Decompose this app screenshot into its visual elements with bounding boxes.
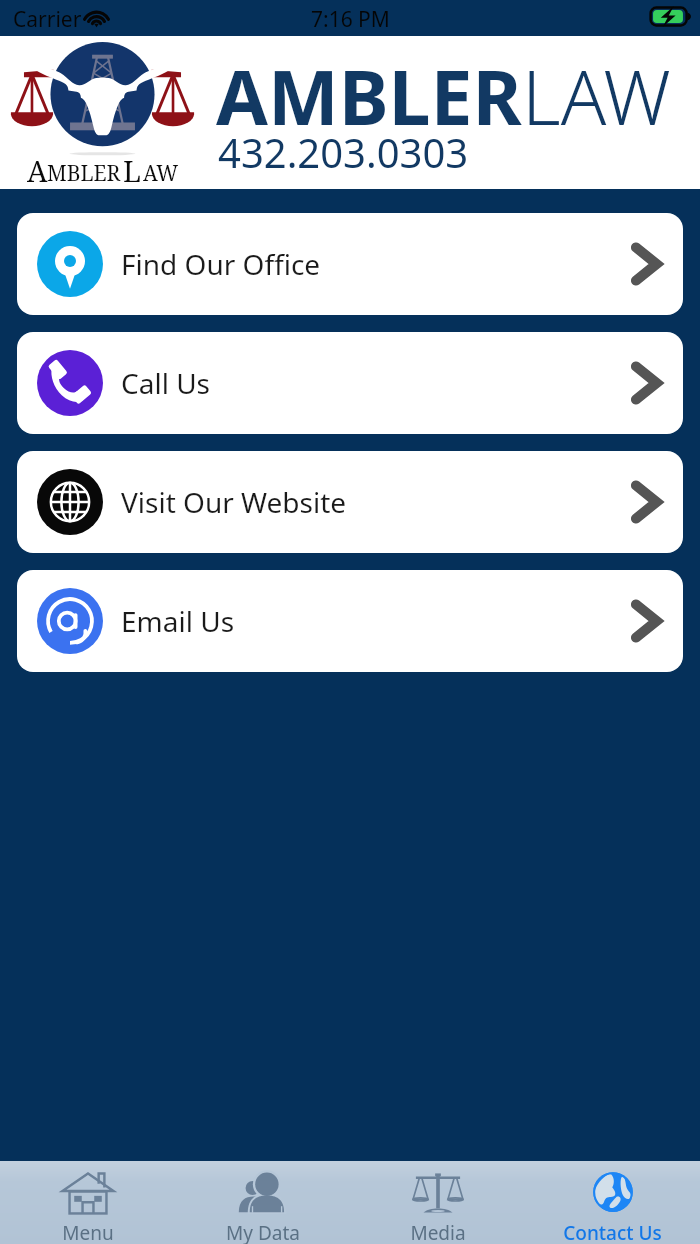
staticText: 7:16 PM (311, 5, 390, 34)
button[interactable]: Visit Our Website (17, 451, 683, 553)
button[interactable]: Call Us (17, 332, 683, 434)
staticText: Find Our Office (121, 245, 321, 283)
staticText: Call Us (121, 364, 211, 402)
staticText: Visit Our Website (121, 483, 347, 521)
staticText: LAW (522, 45, 671, 147)
staticText: AMBLER (216, 45, 522, 147)
staticText: A (27, 151, 48, 190)
staticText: Contact Us (563, 1220, 662, 1244)
button[interactable]: Media (350, 1161, 525, 1244)
button[interactable]: Email Us (17, 570, 683, 672)
staticText: My Data (226, 1220, 300, 1244)
button[interactable]: Menu (0, 1161, 175, 1244)
button[interactable]: My Data (175, 1161, 350, 1244)
button[interactable]: Find Our Office (17, 213, 683, 315)
staticText: 432.203.0303 (218, 125, 469, 179)
staticText: Carrier (13, 5, 82, 34)
button[interactable]: Contact Us (525, 1161, 700, 1244)
staticText: Media (410, 1220, 466, 1244)
staticText: AW (143, 159, 179, 188)
staticText: Menu (62, 1220, 114, 1244)
staticText: Email Us (121, 602, 235, 640)
staticText: MBLER (47, 159, 121, 188)
staticText: L (123, 151, 142, 190)
